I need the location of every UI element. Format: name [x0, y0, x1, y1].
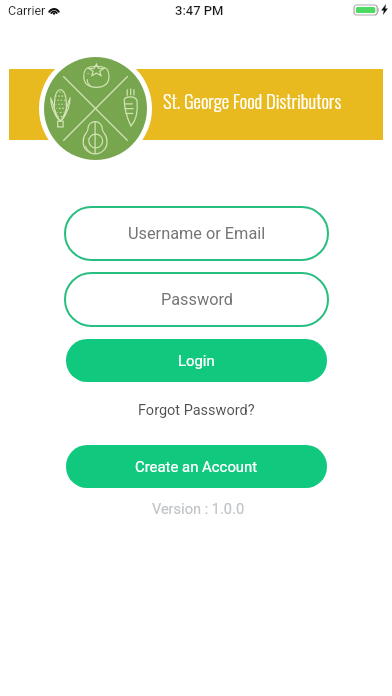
other: Wifi signal: [48, 5, 60, 15]
button[interactable]: Create an Account: [66, 445, 327, 488]
staticText: 3:47 PM: [175, 3, 224, 18]
other: Battery: [354, 5, 379, 15]
button[interactable]: Password: [64, 272, 329, 327]
staticText: Username or Email: [128, 224, 266, 243]
button[interactable]: Login: [66, 339, 327, 382]
staticText: Create an Account: [135, 458, 258, 475]
staticText: St. George Food Distributors: [163, 87, 342, 115]
button[interactable]: Forgot Password?: [130, 399, 262, 421]
staticText: Login: [178, 352, 215, 369]
staticText: Password: [161, 290, 233, 309]
staticText: Carrier: [8, 3, 46, 18]
staticText: Version : 1.0.0: [66, 500, 330, 517]
staticText: Forgot Password?: [138, 402, 255, 419]
button[interactable]: Username or Email: [64, 206, 329, 261]
